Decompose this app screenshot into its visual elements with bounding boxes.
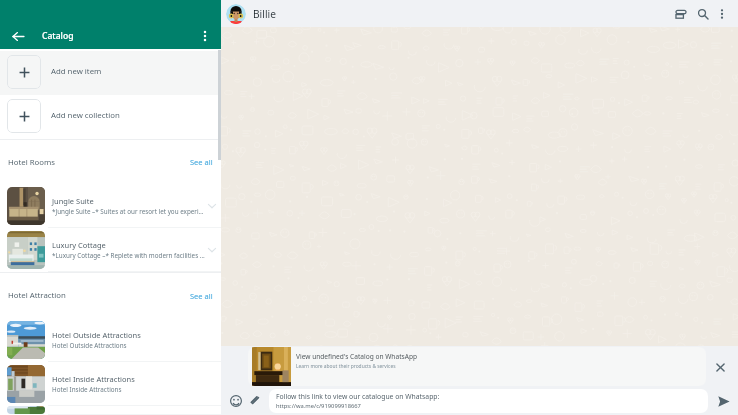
- staticText: See all: [190, 157, 213, 167]
- button[interactable]: Jungle Suite: [0, 184, 221, 227]
- staticText: https://wa.me/c/919099918667: [276, 402, 361, 410]
- staticText: *Luxury Cottage –* Replete with modern f…: [52, 251, 205, 260]
- staticText: Add new item: [51, 66, 102, 77]
- staticText: Luxury Cottage: [52, 240, 106, 250]
- staticText: Hotel Outside Attractions: [52, 341, 127, 350]
- button[interactable]: Emoji: [227, 392, 245, 410]
- button[interactable]: View undefined's Catalog on WhatsApp: [248, 347, 706, 386]
- staticText: Billie: [253, 7, 276, 21]
- button[interactable]: Luxury Cottage: [0, 228, 221, 271]
- button[interactable]: Menu: [713, 5, 731, 23]
- staticText: Hotel Attraction: [8, 290, 66, 301]
- staticText: Catalog: [42, 30, 74, 42]
- button[interactable]: Hotel Outside Attractions: [0, 318, 221, 361]
- staticText: See all: [190, 291, 213, 301]
- button[interactable]: Add new collection: [0, 95, 221, 139]
- button[interactable]: Hotel Inside Attractions: [0, 362, 221, 405]
- staticText: Hotel Rooms: [8, 157, 56, 168]
- staticText: Follow this link to view our catalogue o…: [276, 392, 440, 401]
- button[interactable]: More options: [195, 26, 215, 46]
- staticText: Hotel Inside Attractions: [52, 374, 135, 384]
- staticText: Add new collection: [51, 110, 120, 121]
- staticText: Jungle Suite: [52, 196, 94, 206]
- button[interactable]: Search: [694, 5, 712, 23]
- button[interactable]: Back: [7, 25, 29, 47]
- staticText: *Jungle Suite –* Suites at our resort le…: [52, 207, 205, 216]
- staticText: Hotel Outside Attractions: [52, 330, 141, 340]
- button[interactable]: Close: [706, 353, 734, 381]
- button[interactable]: Follow this link to view our catalogue o…: [269, 389, 708, 413]
- button[interactable]: [0, 406, 221, 414]
- button[interactable]: Attach: [246, 392, 264, 410]
- button[interactable]: See all: [190, 291, 213, 301]
- staticText: Learn more about their products & servic…: [296, 363, 396, 370]
- button[interactable]: Catalog: [672, 5, 690, 23]
- button[interactable]: Send: [713, 391, 733, 411]
- button[interactable]: Add new item: [0, 51, 221, 95]
- staticText: Hotel Inside Attractions: [52, 385, 122, 394]
- staticText: View undefined's Catalog on WhatsApp: [296, 352, 417, 361]
- button[interactable]: See all: [190, 157, 213, 167]
